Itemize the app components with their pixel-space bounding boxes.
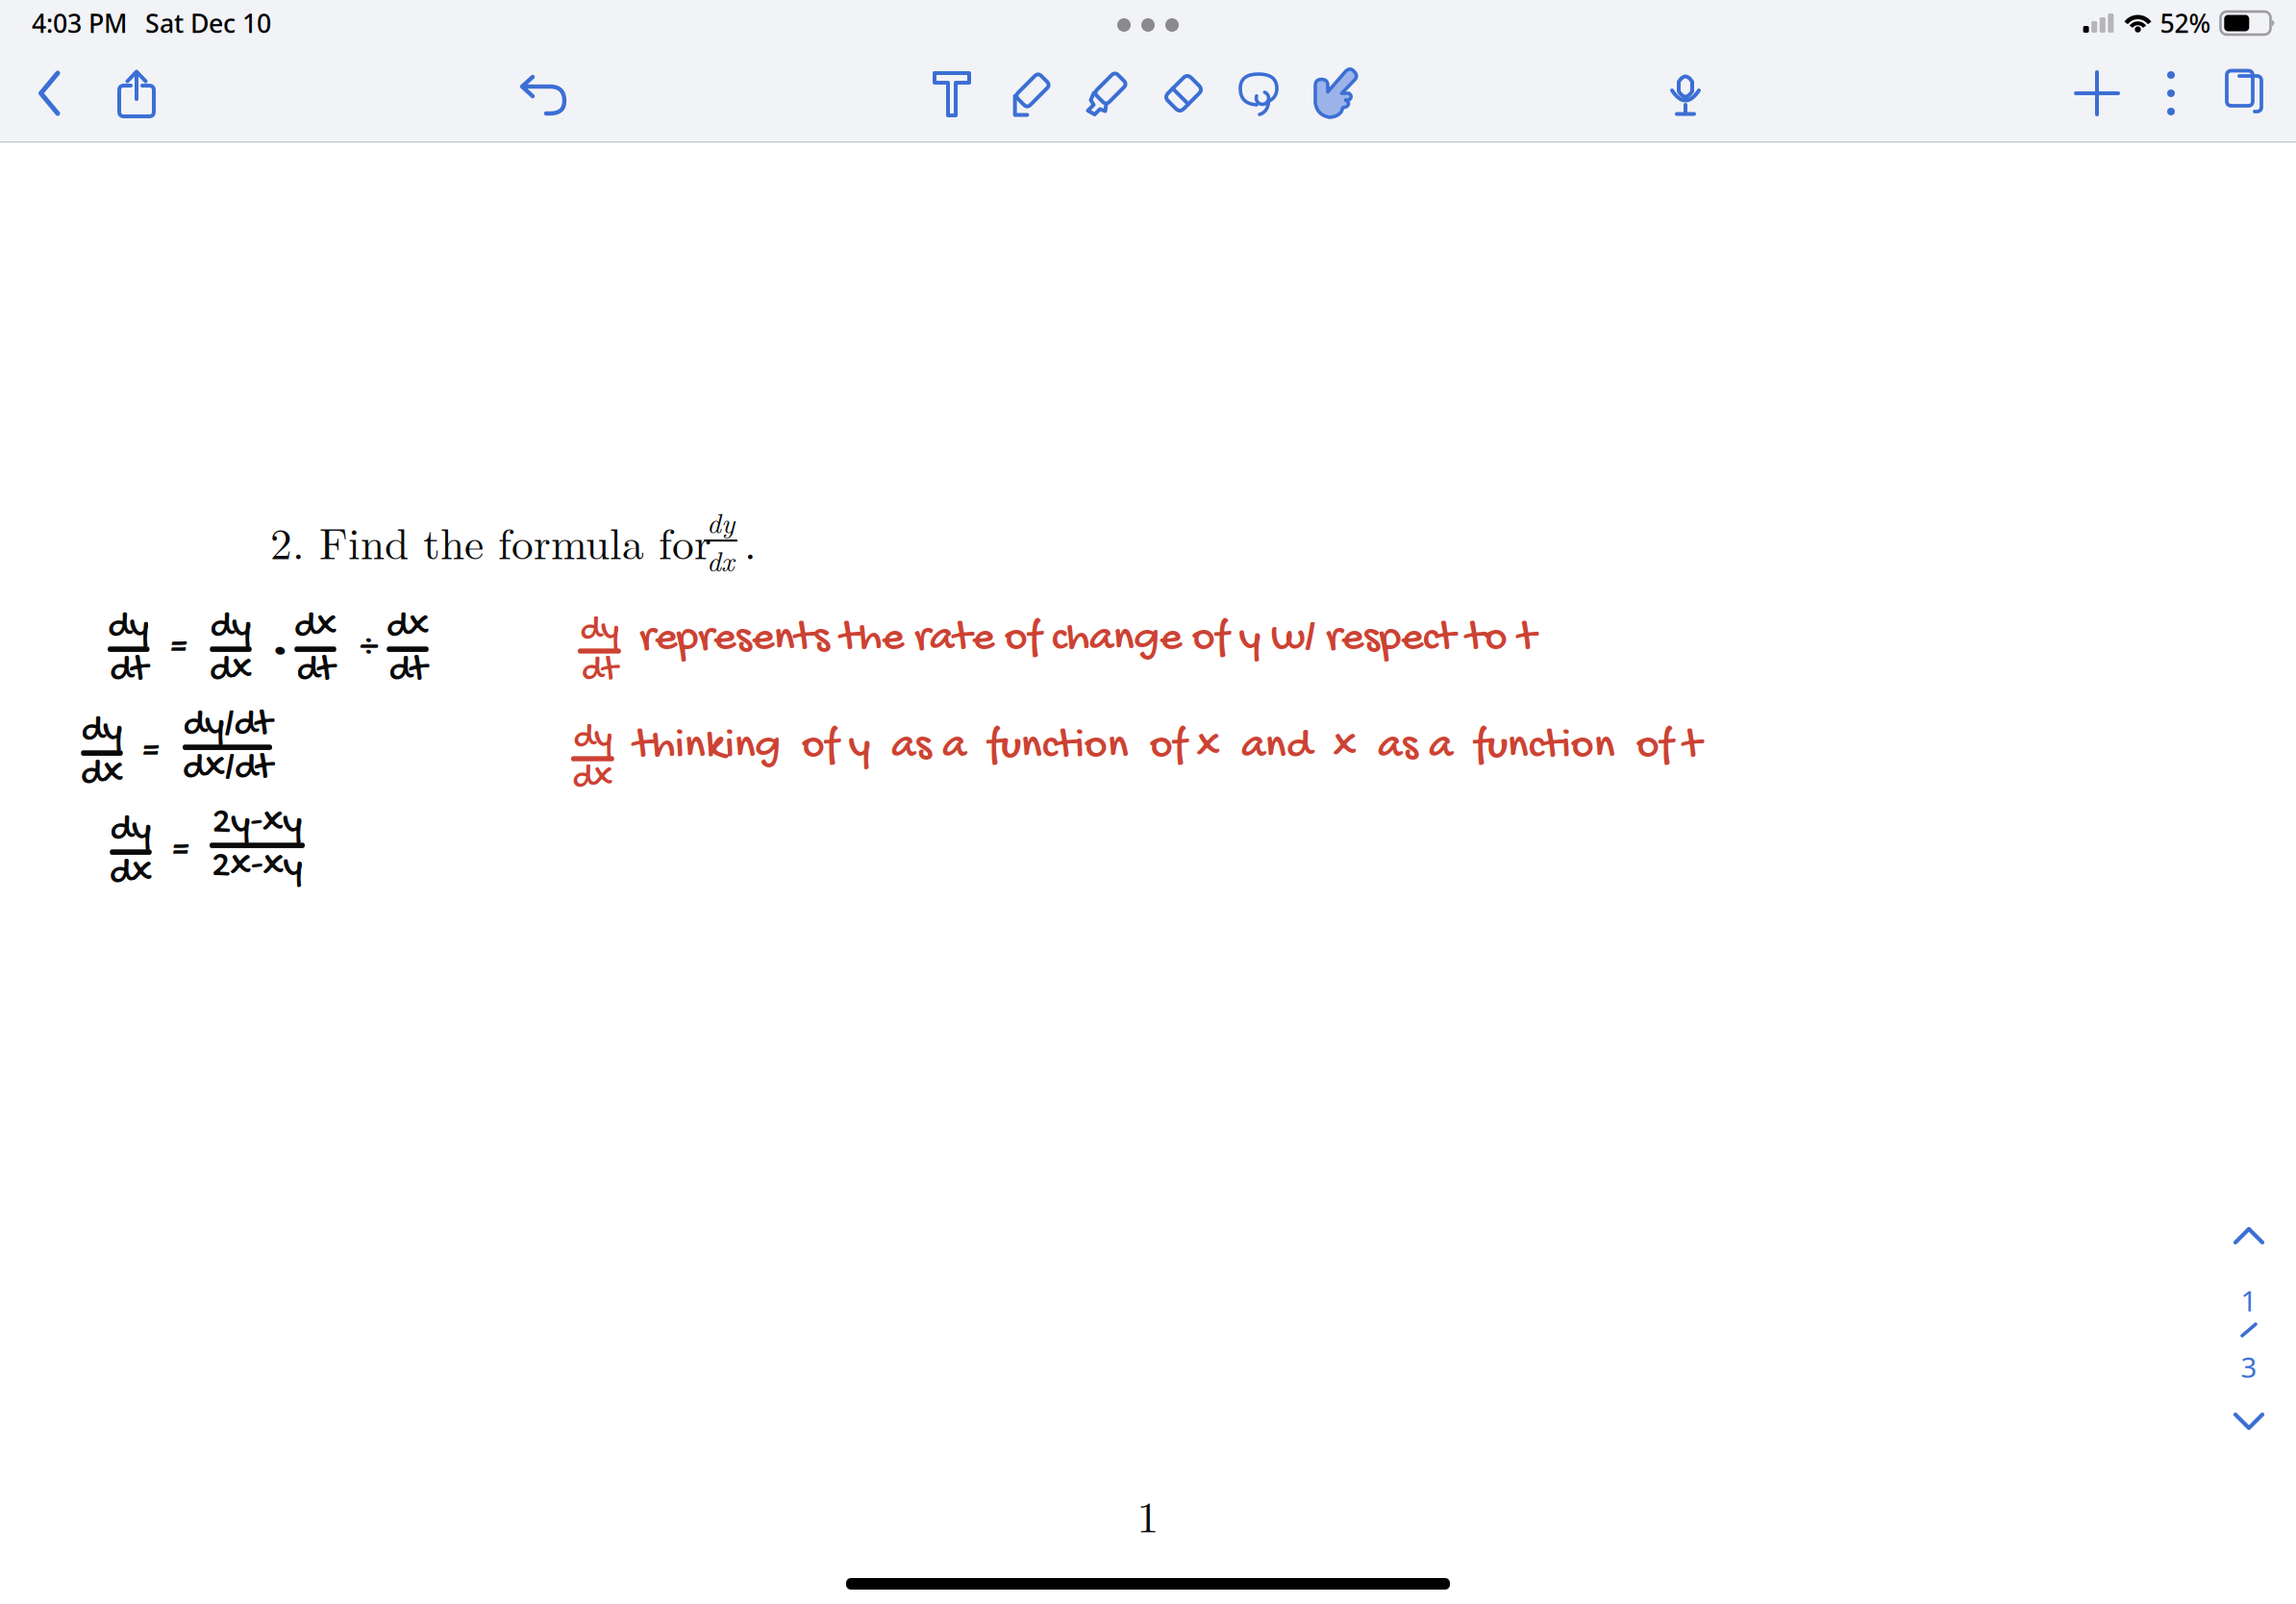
staticText: ÷ xyxy=(360,626,378,671)
staticText: dy xyxy=(81,709,123,754)
staticText: dy xyxy=(108,605,149,650)
staticText: 1 xyxy=(1137,1483,1159,1545)
staticText: Find the formula for xyxy=(319,510,711,572)
staticText: dx xyxy=(81,752,123,797)
staticText: 4:03 PM xyxy=(32,6,127,40)
staticText: 1 xyxy=(2241,1282,2257,1319)
staticText: dx xyxy=(707,540,735,580)
button[interactable]: Hand tool xyxy=(1298,46,1373,140)
button[interactable]: Eraser xyxy=(1146,46,1221,140)
staticText: 2. xyxy=(270,510,305,572)
staticText: 3 xyxy=(2241,1348,2257,1386)
staticText: dy xyxy=(580,610,619,652)
staticText: dy/dt xyxy=(183,703,272,748)
staticText: dy xyxy=(110,808,151,853)
staticText: dy xyxy=(210,605,251,650)
staticText: dx xyxy=(387,605,429,650)
staticText: 2y-xy xyxy=(212,801,302,846)
staticText: dx xyxy=(294,605,337,650)
staticText: 2x-xy xyxy=(212,844,303,890)
button[interactable]: More xyxy=(2142,46,2200,140)
button[interactable]: Text tool xyxy=(914,46,989,140)
staticText: dt xyxy=(297,648,334,693)
button[interactable]: Lasso xyxy=(1221,46,1296,140)
button[interactable]: Highlighter xyxy=(1070,46,1145,140)
button[interactable]: Previous page xyxy=(2215,1213,2283,1261)
button[interactable]: Back xyxy=(12,46,87,140)
staticText: dx/dt xyxy=(183,746,272,792)
staticText: dt xyxy=(389,648,426,693)
staticText: dx xyxy=(210,648,252,693)
staticText: • xyxy=(273,630,287,675)
staticText: dx xyxy=(110,851,152,896)
staticText: . xyxy=(744,510,757,572)
staticText: dt xyxy=(110,648,147,693)
staticText: dt xyxy=(582,650,617,692)
staticText: thinking of y as a function of x and x a… xyxy=(634,721,1702,773)
staticText: represents the rate of change of y w/ re… xyxy=(639,614,1536,665)
staticText: = xyxy=(172,828,189,873)
staticText: 52% xyxy=(2160,6,2211,40)
staticText: dx xyxy=(572,758,613,800)
staticText: = xyxy=(170,625,187,670)
button[interactable]: Share xyxy=(99,46,174,140)
staticText: = xyxy=(142,729,160,774)
button[interactable]: Record audio xyxy=(1648,46,1723,140)
staticText: Sat Dec 10 xyxy=(145,6,271,40)
button[interactable]: Undo xyxy=(502,46,585,140)
staticText: dy xyxy=(573,717,612,760)
button[interactable]: Next page xyxy=(2215,1396,2283,1444)
button[interactable]: Add xyxy=(2059,46,2134,140)
button[interactable]: Pen xyxy=(993,46,1068,140)
staticText: dy xyxy=(707,501,735,541)
button[interactable]: Pages xyxy=(2207,46,2282,140)
